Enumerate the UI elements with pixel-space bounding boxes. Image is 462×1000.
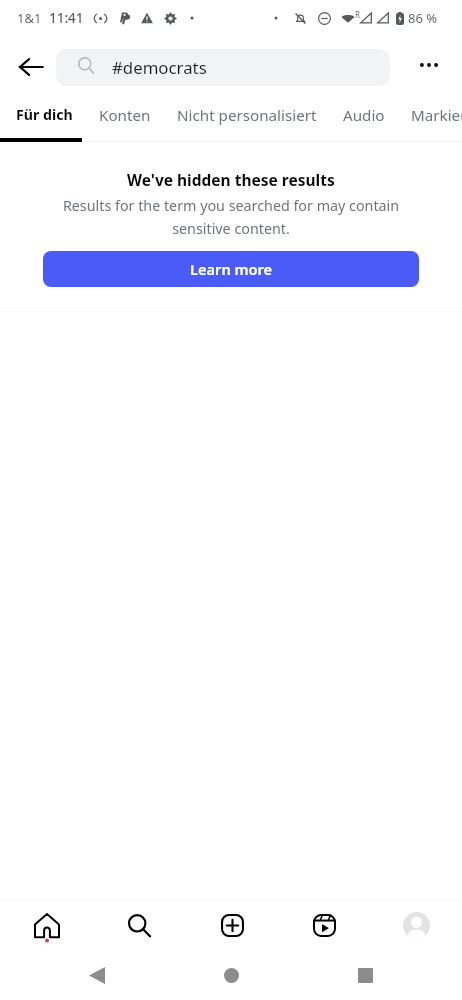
button[interactable]: Home: [209, 953, 253, 997]
button[interactable]: More options: [396, 41, 462, 93]
button[interactable]: Konten: [86, 93, 164, 142]
staticText: R: [355, 9, 360, 20]
button[interactable]: Audio: [330, 93, 398, 142]
staticText: Nicht personalisiert: [177, 105, 317, 126]
button[interactable]: Search: [93, 901, 186, 950]
staticText: 1&1: [17, 9, 42, 27]
button[interactable]: Recent apps: [343, 953, 387, 997]
staticText: We've hidden these results: [127, 169, 335, 190]
staticText: Audio: [343, 105, 385, 126]
button[interactable]: Create: [186, 901, 278, 950]
button[interactable]: Back: [0, 41, 56, 93]
button[interactable]: Learn more: [43, 251, 419, 287]
button[interactable]: Für dich: [2, 93, 86, 142]
staticText: Markiert: [411, 105, 462, 126]
staticText: Für dich: [16, 105, 73, 124]
staticText: Learn more: [190, 259, 273, 279]
staticText: 86 %: [408, 9, 438, 27]
button[interactable]: Profile: [370, 901, 462, 950]
button[interactable]: Home: [0, 901, 93, 950]
button[interactable]: #democrats: [56, 49, 390, 86]
staticText: Results for the term you searched for ma…: [40, 196, 422, 238]
button[interactable]: Reels: [278, 901, 370, 950]
button[interactable]: Nicht personalisiert: [164, 93, 330, 142]
button[interactable]: Markiert: [398, 93, 462, 142]
staticText: Konten: [99, 105, 151, 126]
staticText: 11:41: [49, 9, 84, 27]
button[interactable]: Back: [75, 953, 119, 997]
staticText: #democrats: [112, 56, 207, 79]
